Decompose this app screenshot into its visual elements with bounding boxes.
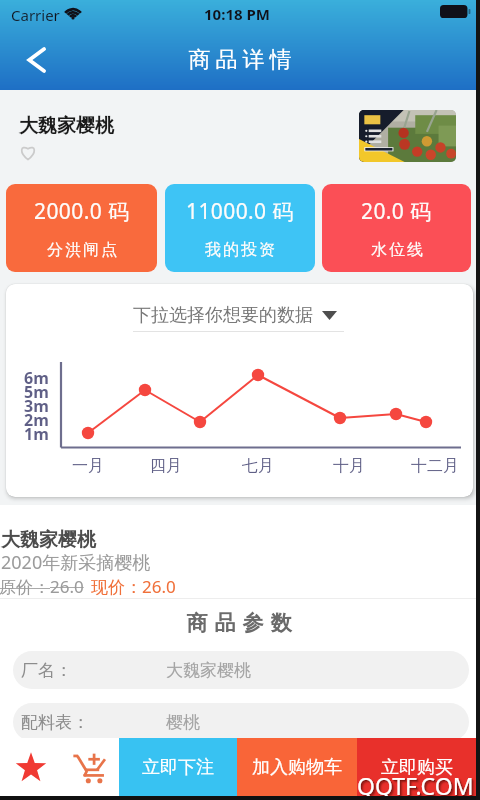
staticText: 十二月 bbox=[411, 456, 459, 476]
staticText: 6m bbox=[24, 367, 49, 389]
staticText: 樱桃 bbox=[166, 712, 200, 733]
staticText: 水位线 bbox=[370, 240, 424, 260]
staticText: 立即下注 bbox=[142, 756, 214, 779]
staticText: 配料表： bbox=[21, 712, 89, 733]
staticText: 2020年新采摘樱桃 bbox=[1, 550, 151, 575]
staticText: 2000.0 码 bbox=[34, 197, 130, 226]
staticText: 5m bbox=[24, 381, 49, 403]
staticText: 2m bbox=[24, 409, 49, 431]
button[interactable]: 厂名： bbox=[13, 651, 469, 689]
staticText: 原价：26.0 bbox=[0, 575, 84, 598]
button[interactable]: Favorite bbox=[19, 143, 37, 161]
staticText: 立即购买 bbox=[381, 756, 453, 779]
staticText: 3m bbox=[24, 395, 49, 417]
button[interactable]: 11000.0 码 bbox=[165, 184, 315, 272]
staticText: 大魏家樱桃 bbox=[166, 660, 251, 681]
staticText: 大魏家樱桃 bbox=[1, 528, 96, 552]
button[interactable]: 20.0 码 bbox=[322, 184, 471, 272]
staticText: 商品详情 bbox=[186, 46, 294, 74]
button[interactable]: Back bbox=[10, 30, 62, 90]
staticText: 分洪闸点 bbox=[46, 240, 118, 260]
button[interactable]: Favorite bbox=[6, 738, 56, 796]
staticText: 加入购物车 bbox=[252, 756, 342, 779]
staticText: 下拉选择你想要的数据 bbox=[133, 304, 313, 327]
staticText: 20.0 码 bbox=[361, 197, 432, 226]
staticText: QQTF.COM bbox=[357, 770, 474, 800]
staticText: 11000.0 码 bbox=[186, 197, 294, 226]
staticText: 四月 bbox=[150, 456, 182, 476]
staticText: 厂名： bbox=[21, 660, 72, 681]
staticText: 七月 bbox=[242, 456, 274, 476]
staticText: 商品参数 bbox=[183, 610, 295, 636]
staticText: 我的投资 bbox=[204, 240, 276, 260]
button[interactable]: 配料表： bbox=[13, 703, 469, 741]
button[interactable]: 2000.0 码 bbox=[6, 184, 157, 272]
staticText: 大魏家樱桃 bbox=[19, 114, 114, 138]
button[interactable]: 下拉选择你想要的数据 bbox=[133, 303, 337, 327]
staticText: Carrier bbox=[11, 5, 60, 25]
staticText: 十月 bbox=[333, 456, 365, 476]
button[interactable]: Add to cart bbox=[64, 738, 114, 796]
staticText: 一月 bbox=[72, 456, 104, 476]
button[interactable]: 立即购买 bbox=[357, 738, 476, 796]
button[interactable]: 加入购物车 bbox=[237, 738, 357, 796]
staticText: 1m bbox=[24, 423, 49, 445]
button[interactable]: 立即下注 bbox=[119, 738, 237, 796]
staticText: 现价：26.0 bbox=[91, 575, 176, 598]
staticText: QQTF.COM bbox=[358, 771, 475, 800]
staticText: 10:18 PM bbox=[204, 4, 270, 24]
